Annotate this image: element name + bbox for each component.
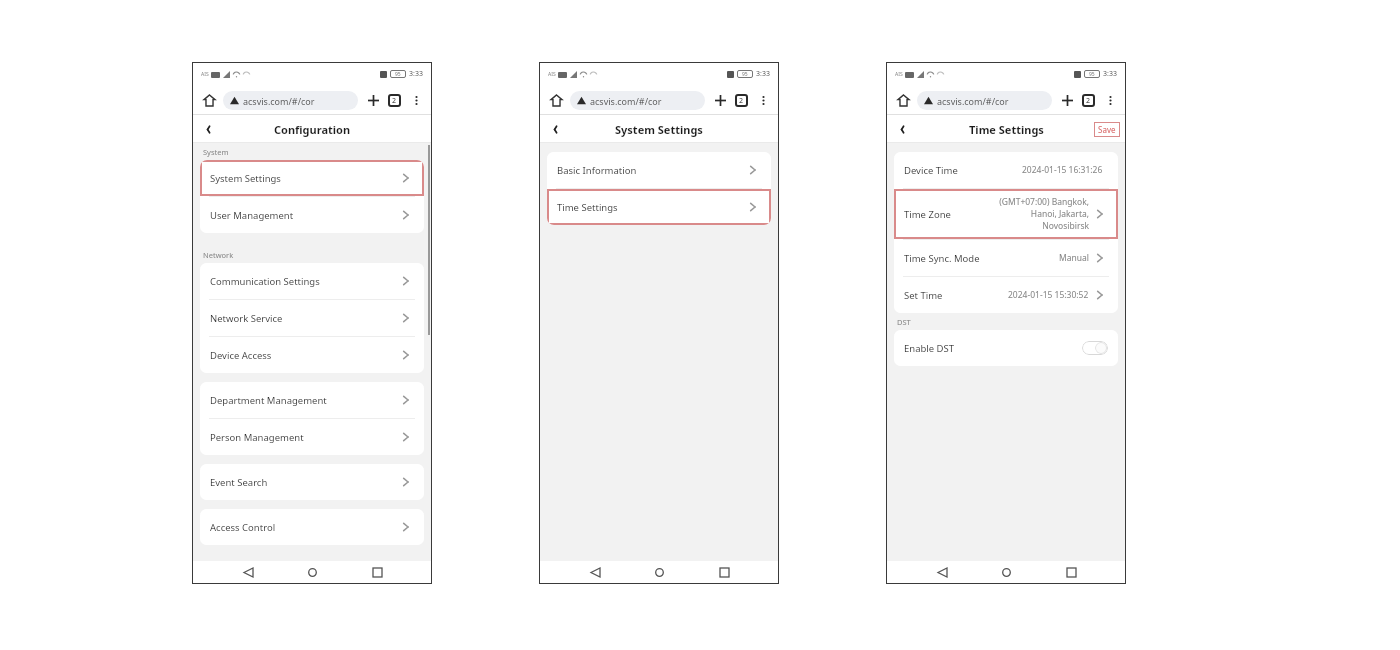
button[interactable]: Home: [894, 91, 912, 109]
staticText: 3:33: [409, 69, 423, 79]
button[interactable]: Home: [302, 562, 322, 582]
button[interactable]: Save: [1094, 122, 1120, 137]
staticText: Basic Information: [557, 164, 637, 177]
staticText: AIS: [895, 71, 903, 78]
staticText: 3:33: [756, 69, 770, 79]
staticText: Access Control: [210, 521, 276, 534]
button[interactable]: acsvis.com/#/cor: [570, 91, 705, 110]
button[interactable]: Home: [200, 91, 218, 109]
staticText: (GMT+07:00) Bangkok,: [999, 196, 1089, 208]
staticText: Set Time: [904, 289, 943, 302]
staticText: Network Service: [210, 312, 283, 325]
staticText: Device Access: [210, 349, 272, 362]
button[interactable]: Back: [198, 119, 218, 139]
button[interactable]: More options: [408, 92, 424, 108]
staticText: Communication Settings: [210, 275, 320, 288]
staticText: 2: [392, 96, 397, 106]
staticText: Configuration: [274, 122, 351, 137]
button[interactable]: Back: [545, 119, 565, 139]
button[interactable]: Tabs: [388, 94, 401, 107]
button[interactable]: Access Control: [200, 509, 424, 545]
button[interactable]: Home: [649, 562, 669, 582]
staticText: 2: [739, 96, 744, 106]
button[interactable]: Communication Settings: [200, 263, 424, 299]
staticText: Time Settings: [557, 201, 618, 214]
staticText: Time Sync. Mode: [904, 252, 980, 265]
staticText: User Management: [210, 209, 294, 222]
button[interactable]: Home: [996, 562, 1016, 582]
staticText: 3:33: [1103, 69, 1117, 79]
button[interactable]: Home: [547, 91, 565, 109]
staticText: acsvis.com/#/cor: [937, 95, 1009, 107]
staticText: Enable DST: [904, 342, 955, 355]
button[interactable]: acsvis.com/#/cor: [223, 91, 358, 110]
button[interactable]: New tab: [364, 91, 382, 109]
button[interactable]: Enable DST toggle: [1082, 341, 1108, 355]
button[interactable]: More options: [1102, 92, 1118, 108]
staticText: Department Management: [210, 394, 327, 407]
staticText: 95: [742, 71, 748, 78]
button[interactable]: Back: [585, 562, 605, 582]
button[interactable]: Set Time: [894, 277, 1118, 313]
button[interactable]: Person Management: [200, 419, 424, 455]
button[interactable]: Tabs: [735, 94, 748, 107]
staticText: Device Time: [904, 164, 958, 177]
button[interactable]: New tab: [1058, 91, 1076, 109]
button[interactable]: Recents: [367, 562, 387, 582]
staticText: AIS: [201, 71, 209, 78]
button[interactable]: Back: [932, 562, 952, 582]
staticText: 95: [395, 71, 401, 78]
staticText: System Settings: [615, 122, 703, 137]
staticText: Hanoi, Jakarta,: [1030, 208, 1089, 220]
staticText: 2024-01-15 15:30:52: [1008, 289, 1089, 301]
button[interactable]: Time Zone: [894, 189, 1118, 239]
staticText: System: [203, 147, 229, 157]
button[interactable]: Enable DST: [894, 330, 1118, 366]
button[interactable]: Time Sync. Mode: [894, 240, 1118, 276]
button[interactable]: acsvis.com/#/cor: [917, 91, 1052, 110]
staticText: acsvis.com/#/cor: [243, 95, 315, 107]
button[interactable]: Recents: [714, 562, 734, 582]
button[interactable]: System Settings: [200, 160, 424, 196]
staticText: acsvis.com/#/cor: [590, 95, 662, 107]
button[interactable]: User Management: [200, 197, 424, 233]
staticText: 2: [1086, 96, 1091, 106]
staticText: Manual: [1059, 252, 1089, 264]
button[interactable]: Back: [892, 119, 912, 139]
button[interactable]: Tabs: [1082, 94, 1095, 107]
staticText: Event Search: [210, 476, 268, 489]
staticText: Person Management: [210, 431, 304, 444]
staticText: 2024-01-15 16:31:26: [1022, 164, 1103, 176]
button[interactable]: Network Service: [200, 300, 424, 336]
staticText: Novosibirsk: [1042, 220, 1089, 232]
staticText: DST: [897, 317, 911, 327]
staticText: Time Settings: [969, 122, 1044, 137]
staticText: 95: [1089, 71, 1095, 78]
button[interactable]: Department Management: [200, 382, 424, 418]
staticText: System Settings: [210, 172, 281, 185]
button[interactable]: Device Access: [200, 337, 424, 373]
button[interactable]: New tab: [711, 91, 729, 109]
button[interactable]: Recents: [1061, 562, 1081, 582]
button[interactable]: Event Search: [200, 464, 424, 500]
staticText: Time Zone: [904, 208, 951, 221]
staticText: AIS: [548, 71, 556, 78]
staticText: Network: [203, 250, 234, 260]
button[interactable]: Device Time: [894, 152, 1118, 188]
button[interactable]: More options: [755, 92, 771, 108]
button[interactable]: Basic Information: [547, 152, 771, 188]
button[interactable]: Back: [238, 562, 258, 582]
button[interactable]: Time Settings: [547, 189, 771, 225]
staticText: Save: [1098, 124, 1116, 135]
